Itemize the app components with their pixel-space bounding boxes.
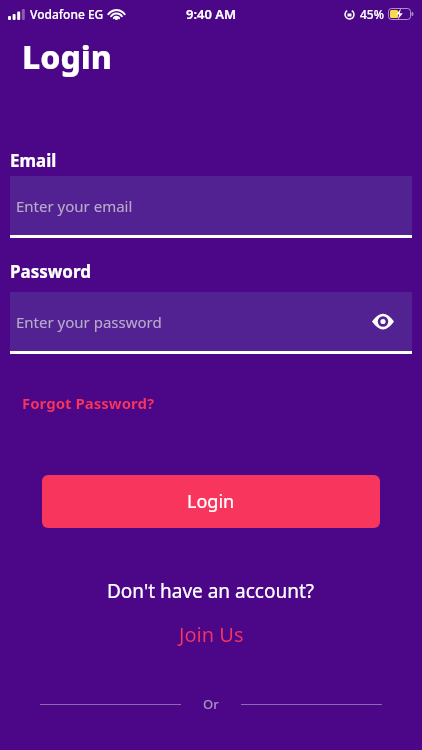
staticText: 45% xyxy=(360,6,384,22)
staticText: Password xyxy=(10,260,91,283)
staticText: Don't have an account? xyxy=(107,578,315,604)
button[interactable]: Forgot Password? xyxy=(22,393,155,413)
button[interactable]: Enter your email xyxy=(10,176,412,235)
staticText: Email xyxy=(10,149,57,172)
staticText: Or xyxy=(203,695,219,713)
staticText: Enter your email xyxy=(16,196,133,216)
button[interactable]: Login xyxy=(42,475,380,528)
staticText: Login xyxy=(22,35,112,79)
button[interactable]: Join Us xyxy=(179,621,244,648)
staticText: Vodafone EG xyxy=(30,6,104,22)
staticText: Login xyxy=(187,489,235,514)
button[interactable]: Enter your password xyxy=(10,292,412,351)
staticText: 9:40 AM xyxy=(186,5,237,23)
staticText: Enter your password xyxy=(16,312,162,332)
